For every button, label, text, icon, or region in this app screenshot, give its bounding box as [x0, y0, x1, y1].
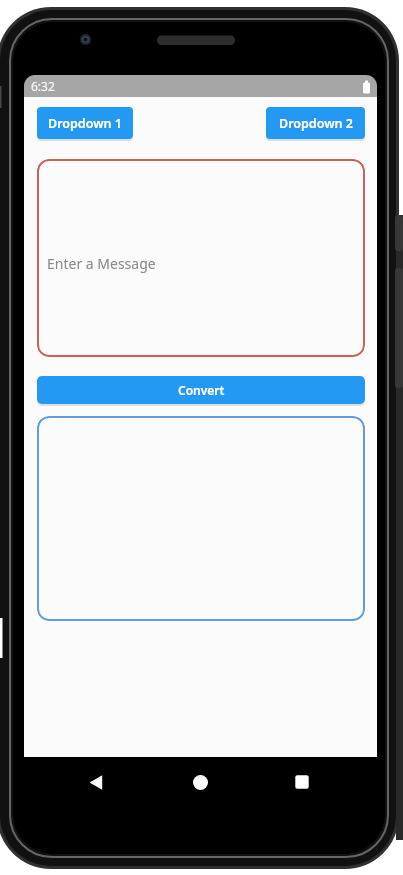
button[interactable]: Dropdown 2	[266, 107, 365, 139]
button[interactable]	[286, 766, 318, 798]
staticText: Enter a Message	[47, 254, 156, 273]
staticText: 6:32	[31, 78, 55, 94]
button[interactable]: Dropdown 1	[37, 107, 133, 139]
staticText: Convert	[178, 382, 225, 398]
staticText: Dropdown 1	[48, 115, 122, 132]
button[interactable]	[80, 766, 112, 798]
button[interactable]	[184, 766, 216, 798]
button[interactable]: Convert	[37, 376, 365, 404]
button[interactable]: Enter a Message	[37, 159, 365, 357]
staticText: Dropdown 2	[279, 115, 353, 132]
